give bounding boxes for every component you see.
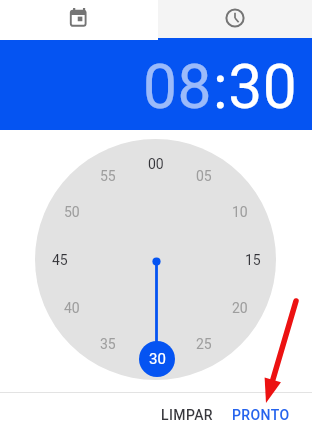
staticText: 50 [64,204,80,220]
staticText: 40 [64,300,80,316]
button[interactable]: LIMPAR [149,401,225,429]
staticText: 00 [148,156,164,172]
staticText: 20 [232,300,248,316]
staticText: 10 [232,204,248,220]
button[interactable]: PRONTO [223,401,299,429]
staticText: LIMPAR [161,407,213,423]
staticText: 15 [245,252,261,268]
staticText: PRONTO [232,407,290,423]
staticText: :30 [213,52,298,123]
button[interactable]: 30 [139,341,175,377]
button[interactable] [0,0,158,40]
staticText: 45 [52,252,68,268]
staticText: 25 [196,336,212,352]
button[interactable] [158,0,312,38]
staticText: 08 [143,52,213,123]
staticText: 30 [149,350,166,368]
staticText: 55 [100,168,116,184]
staticText: 05 [196,168,212,184]
staticText: 35 [100,336,116,352]
